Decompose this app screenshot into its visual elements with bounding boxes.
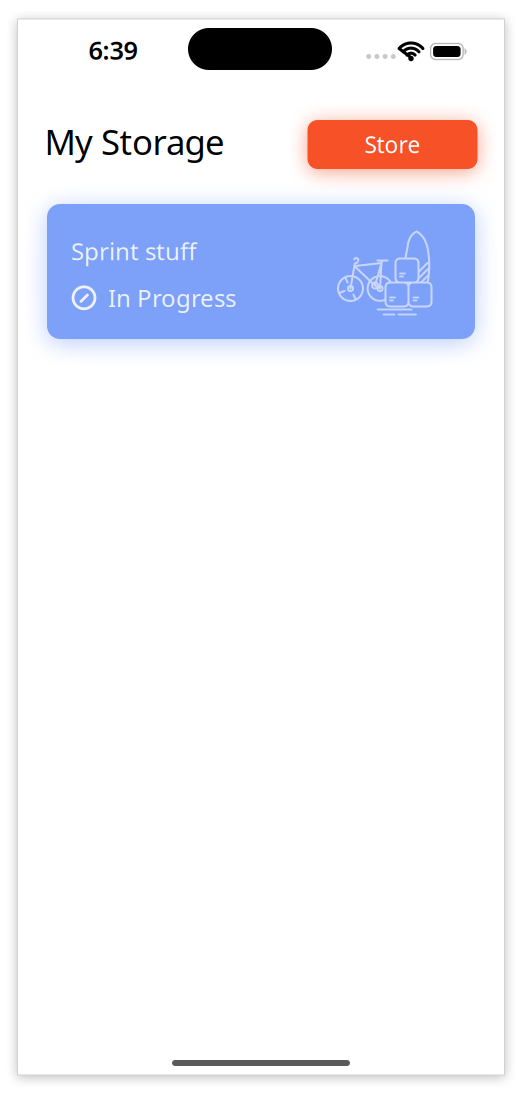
staticText: Store [364,129,420,159]
staticText: 6:39 [88,33,137,67]
button[interactable]: Store [307,120,477,169]
button[interactable]: Sprint stuff [47,204,475,339]
staticText: Sprint stuff [71,235,197,267]
staticText: My Storage [44,118,225,164]
staticText: In Progress [108,282,236,314]
